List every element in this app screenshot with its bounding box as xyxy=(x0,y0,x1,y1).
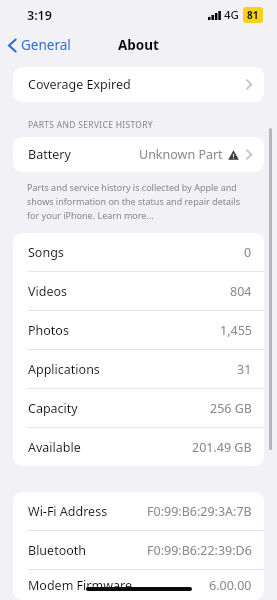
staticText: Photos xyxy=(28,322,69,339)
other: Home indicator xyxy=(86,587,192,591)
button[interactable]: Battery xyxy=(13,137,264,172)
staticText: 256 GB xyxy=(210,400,252,417)
staticText: Songs xyxy=(28,244,64,261)
button[interactable]: Modem Firmware xyxy=(13,570,264,600)
staticText: 81 xyxy=(247,8,259,22)
staticText: 3:19 xyxy=(27,7,52,24)
button[interactable]: Available xyxy=(13,428,264,466)
staticText: Bluetooth xyxy=(28,542,87,559)
staticText: Modem Firmware xyxy=(28,577,132,594)
staticText: F0:99:B6:22:39:D6 xyxy=(147,542,252,559)
button[interactable]: Songs xyxy=(13,233,264,272)
staticText: 31 xyxy=(237,361,252,378)
staticText: Applications xyxy=(28,361,100,378)
button[interactable]: Videos xyxy=(13,272,264,311)
staticText: 4G xyxy=(224,7,239,23)
staticText: 1,455 xyxy=(220,322,252,339)
staticText: Parts and service history is collected b… xyxy=(27,181,250,221)
staticText: 804 xyxy=(230,283,252,300)
button[interactable]: Bluetooth xyxy=(13,531,264,570)
staticText: 6.00.00 xyxy=(209,577,252,594)
button[interactable]: Wi-Fi Address xyxy=(13,492,264,531)
staticText: Battery xyxy=(28,146,71,163)
staticText: Wi-Fi Address xyxy=(28,503,108,520)
staticText: Coverage Expired xyxy=(28,76,131,93)
staticText: General xyxy=(21,36,71,54)
staticText: 201.49 GB xyxy=(192,439,252,456)
button[interactable]: Applications xyxy=(13,350,264,389)
staticText: About xyxy=(118,36,159,54)
button[interactable]: General xyxy=(0,32,79,58)
staticText: PARTS AND SERVICE HISTORY xyxy=(28,119,153,131)
button[interactable]: Photos xyxy=(13,311,264,350)
staticText: 0 xyxy=(244,244,252,261)
staticText: Available xyxy=(28,439,81,456)
staticText: Unknown Part xyxy=(139,146,223,163)
staticText: Capacity xyxy=(28,400,78,417)
button[interactable]: Capacity xyxy=(13,389,264,428)
staticText: Videos xyxy=(28,283,68,300)
staticText: F0:99:B6:29:3A:7B xyxy=(147,503,252,520)
button[interactable]: Coverage Expired xyxy=(13,67,264,102)
